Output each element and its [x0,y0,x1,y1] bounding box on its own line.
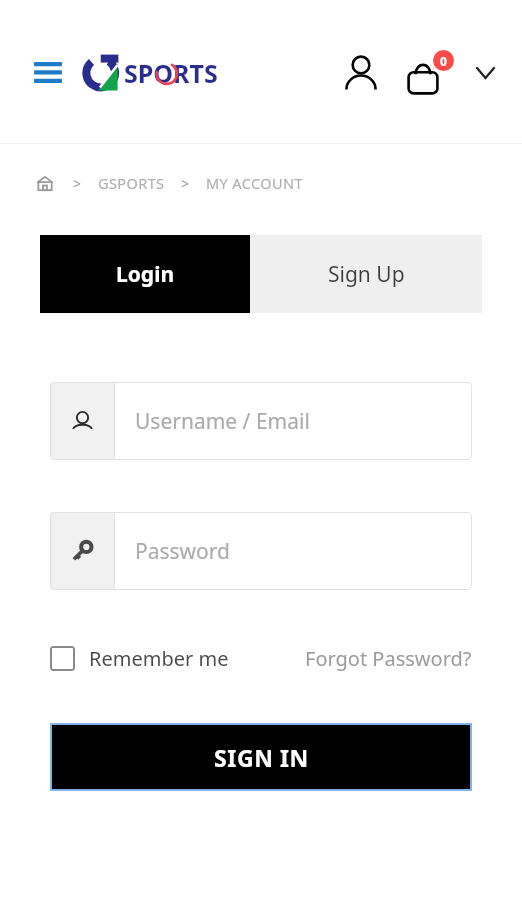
button[interactable]: Account [338,50,384,96]
button[interactable]: Sign Up [250,235,482,313]
staticText: GSPORTS [98,173,165,193]
staticText: > [181,174,190,193]
staticText: SPORTS [124,56,218,90]
staticText: Password [135,537,230,566]
button[interactable]: Forgot Password? [305,645,472,672]
staticText: > [73,174,82,193]
button[interactable]: More [470,58,500,88]
button[interactable]: Login [40,235,250,313]
button[interactable]: GSPORTS [98,173,165,193]
button[interactable]: Remember me [50,645,229,672]
button[interactable]: Home [33,171,57,195]
staticText: Username / Email [135,407,310,436]
button[interactable]: Menu [33,58,63,88]
staticText: 0 [440,53,447,69]
button[interactable]: Cart [406,50,456,96]
staticText: Remember me [89,645,229,672]
staticText: Forgot Password? [305,645,472,672]
staticText: MY ACCOUNT [206,173,303,193]
staticText: SIGN IN [214,742,309,773]
button[interactable]: SPORTS [81,55,218,91]
button[interactable]: SIGN IN [52,725,470,789]
staticText: Login [116,260,175,289]
button[interactable]: Username / Email [50,382,472,460]
button[interactable]: Password [50,512,472,590]
staticText: Sign Up [328,260,405,289]
